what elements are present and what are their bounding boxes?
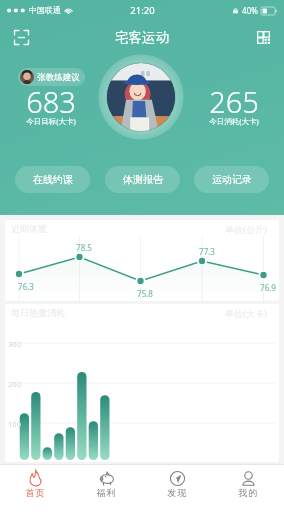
staticText: 我的 xyxy=(238,487,259,498)
staticText: 今日目标(大卡) xyxy=(26,116,76,126)
button[interactable]: 我的 xyxy=(213,465,284,520)
staticText: 发现 xyxy=(167,487,188,498)
button[interactable]: 福利 xyxy=(71,465,142,520)
staticText: 体测报告 xyxy=(123,173,163,186)
staticText: 宅客运动 xyxy=(115,29,169,46)
staticText: 100 xyxy=(8,419,21,429)
button[interactable]: 发现 xyxy=(142,465,213,520)
staticText: 78.5 xyxy=(76,242,92,253)
staticText: 77.3 xyxy=(199,246,215,257)
button[interactable]: 首页 xyxy=(0,465,71,520)
button[interactable]: QR code xyxy=(250,24,276,50)
button[interactable]: 张教练建议 xyxy=(18,68,85,86)
staticText: 每日热量消耗 xyxy=(11,307,65,318)
button[interactable]: 体测报告 xyxy=(105,166,180,193)
staticText: 76.3 xyxy=(18,281,34,292)
staticText: 单位(大卡) xyxy=(225,307,267,319)
button[interactable]: Scan xyxy=(8,24,34,50)
staticText: 76.9 xyxy=(260,282,276,293)
staticText: 运动记录 xyxy=(212,173,252,186)
staticText: 福利 xyxy=(96,487,117,498)
staticText: 200 xyxy=(8,379,21,389)
button[interactable]: 在线约课 xyxy=(15,166,90,193)
staticText: 中国联通 xyxy=(29,5,61,15)
staticText: 75.8 xyxy=(137,288,153,299)
staticText: 300 xyxy=(8,339,21,349)
button[interactable]: 运动记录 xyxy=(194,166,269,193)
staticText: 265 xyxy=(209,82,259,121)
staticText: 首页 xyxy=(25,487,46,498)
staticText: 在线约课 xyxy=(33,173,73,186)
staticText: 单位(公斤) xyxy=(225,223,267,235)
staticText: 21:20 xyxy=(130,4,155,17)
staticText: 683 xyxy=(26,82,76,121)
staticText: 今日消耗(大卡) xyxy=(209,116,259,126)
staticText: 40% xyxy=(242,5,258,16)
staticText: 张教练建议 xyxy=(37,72,80,83)
staticText: 近期体重 xyxy=(11,223,47,234)
